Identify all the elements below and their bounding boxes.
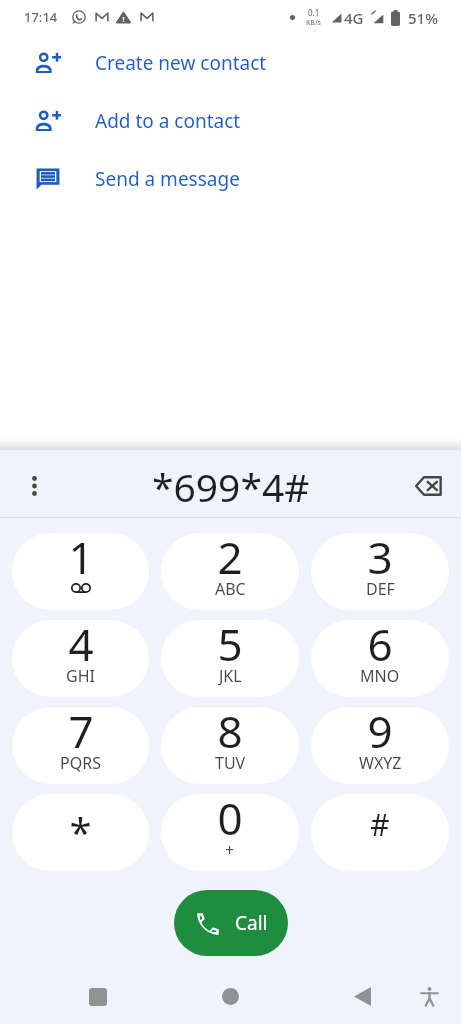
staticText: 4 [68,620,94,674]
staticText: 4G [344,8,364,28]
staticText: GHI [66,665,95,687]
staticText: 0 [217,794,243,848]
staticText: WXYZ [359,752,402,774]
staticText: 8 [217,707,243,761]
button[interactable]: 9 [311,707,449,784]
button[interactable]: 8 [161,707,299,784]
button[interactable]: Call [174,890,288,956]
staticText: Send a message [95,166,240,192]
button[interactable]: 4 [12,620,149,697]
staticText: KB/s [306,18,321,28]
button[interactable]: 2 [161,533,299,610]
staticText: 51% [408,8,438,28]
staticText: # [370,804,390,845]
button[interactable]: More options [17,469,51,503]
staticText: 0.1 [308,7,320,18]
button[interactable]: 5 [161,620,299,697]
button[interactable]: 1 [12,533,149,610]
staticText: MNO [360,665,400,687]
button[interactable]: Backspace [411,469,445,503]
staticText: PQRS [60,752,101,774]
staticText: JKL [219,665,242,687]
button[interactable]: Create new contact [0,34,461,92]
staticText: *699*4# [152,460,310,513]
button[interactable]: 3 [311,533,449,610]
staticText: Call [235,910,268,936]
staticText: 2 [217,533,243,587]
button[interactable]: 7 [12,707,149,784]
button[interactable]: Recents [70,969,126,1024]
staticText: 9 [367,707,393,761]
staticText: 3 [367,533,393,587]
staticText: 1 [68,533,94,587]
button[interactable]: Accessibility [407,969,451,1024]
button[interactable]: # [311,794,449,871]
staticText: * [69,804,92,858]
staticText: Add to a contact [95,108,241,134]
button[interactable]: Send a message [0,150,461,208]
staticText: TUV [215,752,246,774]
button[interactable]: Add to a contact [0,92,461,150]
staticText: 7 [68,707,94,761]
button[interactable]: Back [334,969,390,1024]
button[interactable]: Home [202,969,258,1024]
staticText: 6 [367,620,393,674]
staticText: Create new contact [95,50,267,76]
staticText: 5 [217,620,243,674]
staticText: + [225,839,235,861]
staticText: 17:14 [24,8,58,26]
staticText: DEF [366,578,395,600]
button[interactable]: 0 [161,794,299,871]
button[interactable]: * [12,794,149,871]
button[interactable]: 6 [311,620,449,697]
staticText: ABC [215,578,246,600]
